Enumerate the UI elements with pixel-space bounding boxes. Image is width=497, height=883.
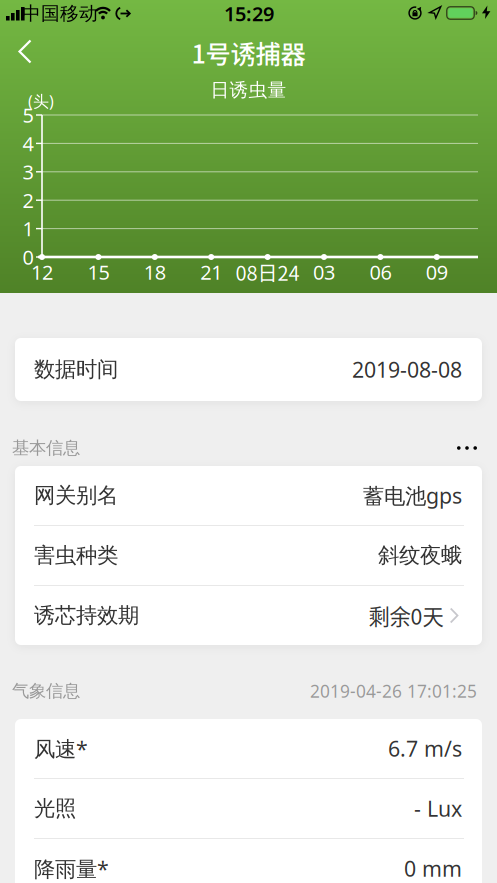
staticText: 降雨量*	[34, 854, 109, 883]
staticText: 0	[22, 244, 33, 270]
staticText: 3	[22, 158, 33, 185]
button[interactable]: 诱芯持效期	[15, 586, 482, 645]
staticText: 诱芯持效期	[34, 602, 139, 629]
staticText: 4	[22, 130, 33, 157]
staticText: 0 mm	[404, 854, 462, 883]
staticText: 21	[200, 259, 222, 285]
staticText: 08日24	[236, 257, 300, 286]
staticText: 气象信息	[12, 680, 80, 702]
staticText: 蓄电池gps	[363, 481, 462, 510]
staticText: (头)	[28, 90, 54, 112]
staticText: 12	[31, 259, 53, 285]
staticText: 基本信息	[12, 437, 80, 459]
staticText: 1	[22, 215, 33, 242]
staticText: 斜纹夜蛾	[378, 542, 462, 569]
staticText: 15	[87, 259, 109, 285]
staticText: 光照	[34, 795, 76, 822]
button[interactable]: Back	[0, 29, 44, 73]
staticText: 2019-04-26 17:01:25	[310, 679, 477, 702]
staticText: 2019-08-08	[352, 355, 462, 384]
staticText: 09	[426, 259, 448, 285]
staticText: 18	[144, 259, 166, 285]
staticText: 2	[22, 187, 33, 213]
staticText: 1号诱捕器	[191, 34, 305, 71]
button[interactable]: More	[457, 446, 479, 450]
staticText: 06	[369, 259, 391, 285]
staticText: 网关别名	[34, 482, 118, 509]
staticText: - Lux	[414, 794, 462, 823]
staticText: 日诱虫量	[210, 78, 286, 101]
staticText: 6.7 m/s	[388, 734, 462, 763]
staticText: 5	[22, 102, 33, 128]
staticText: 中国移动	[22, 2, 98, 25]
staticText: 15:29	[224, 0, 274, 27]
staticText: 剩余0天	[368, 600, 443, 631]
staticText: 风速*	[34, 734, 88, 763]
staticText: 数据时间	[34, 356, 118, 383]
staticText: 03	[313, 259, 335, 285]
staticText: 害虫种类	[34, 542, 118, 569]
